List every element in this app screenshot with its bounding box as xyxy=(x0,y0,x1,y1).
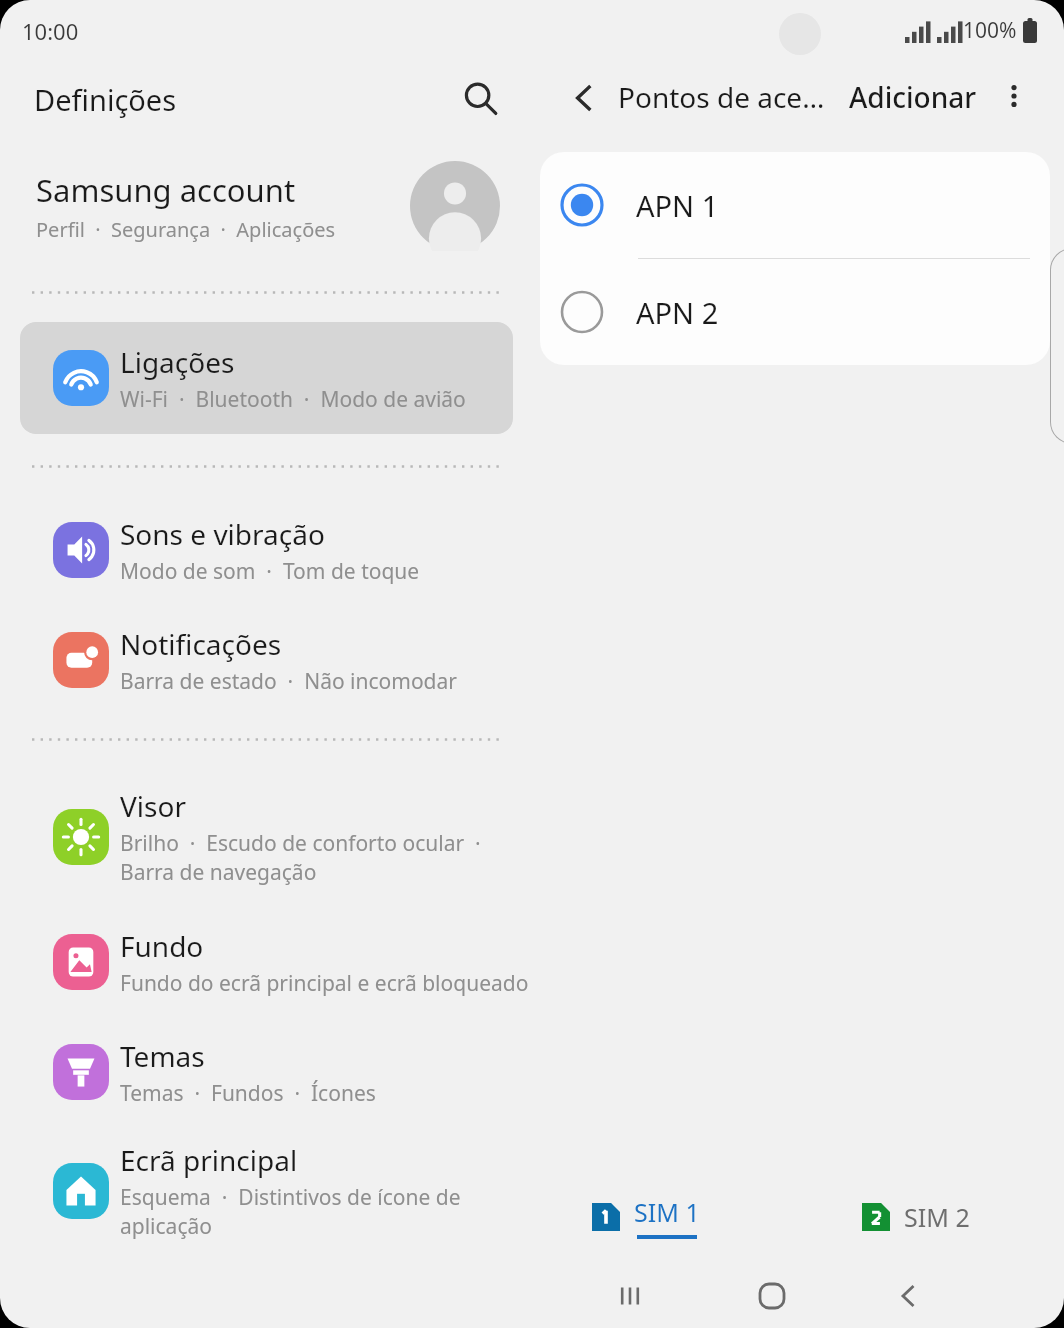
button[interactable]: Notificações xyxy=(20,610,513,710)
button[interactable]: Back xyxy=(848,1265,968,1327)
staticText: Wi-Fi · Bluetooth · Modo de avião xyxy=(120,385,466,414)
staticText: Samsung account xyxy=(36,169,296,211)
button[interactable]: Pontos de ace… xyxy=(618,78,843,116)
button[interactable]: Samsung account xyxy=(0,150,532,262)
button[interactable]: Ligações xyxy=(20,322,513,434)
staticText: Modo de som · Tom de toque xyxy=(120,557,420,586)
staticText: Barra de navegação xyxy=(120,858,317,887)
staticText: Temas · Fundos · Ícones xyxy=(120,1079,376,1108)
button[interactable]: Search xyxy=(452,70,508,126)
staticText: Ligações xyxy=(120,343,235,381)
staticText: Barra de estado · Não incomodar xyxy=(120,667,457,696)
button[interactable]: SIM 2 xyxy=(862,1185,970,1249)
staticText: Definições xyxy=(34,80,177,119)
staticText: Brilho · Escudo de conforto ocular · xyxy=(120,829,481,858)
staticText: APN 2 xyxy=(636,293,719,332)
button[interactable]: Back xyxy=(556,70,612,126)
staticText: Esquema · Distintivos de ícone de xyxy=(120,1183,461,1212)
staticText: Adicionar xyxy=(849,78,977,116)
button[interactable]: Recents xyxy=(560,1265,700,1327)
staticText: Fundo do ecrã principal e ecrã bloqueado xyxy=(120,969,529,998)
staticText: Pontos de ace… xyxy=(618,78,825,116)
button[interactable]: Fundo xyxy=(20,912,513,1012)
staticText: SIM 2 xyxy=(904,1200,970,1234)
button[interactable]: Adicionar xyxy=(845,70,981,124)
button[interactable]: More options xyxy=(988,70,1040,122)
staticText: Temas xyxy=(120,1037,205,1075)
staticText: Fundo xyxy=(120,927,204,965)
staticText: Perfil · Segurança · Aplicações xyxy=(36,216,336,243)
staticText: Visor xyxy=(120,787,186,825)
staticText: aplicação xyxy=(120,1212,212,1241)
button[interactable]: Home xyxy=(712,1265,832,1327)
button[interactable]: APN 1 xyxy=(540,152,1050,258)
button[interactable]: Temas xyxy=(20,1022,513,1122)
button[interactable]: Ecrã principal xyxy=(20,1132,513,1250)
staticText: SIM 1 xyxy=(634,1195,700,1229)
staticText: Sons e vibração xyxy=(120,515,325,553)
button[interactable]: SIM 1 xyxy=(592,1185,700,1249)
button[interactable]: Sons e vibração xyxy=(20,500,513,600)
button[interactable]: APN 2 xyxy=(540,259,1050,365)
staticText: 10:00 xyxy=(22,16,79,46)
staticText: Notificações xyxy=(120,625,282,663)
button[interactable]: Visor xyxy=(20,778,513,896)
staticText: APN 1 xyxy=(636,186,719,225)
staticText: 100% xyxy=(963,16,1017,45)
staticText: Ecrã principal xyxy=(120,1141,298,1179)
